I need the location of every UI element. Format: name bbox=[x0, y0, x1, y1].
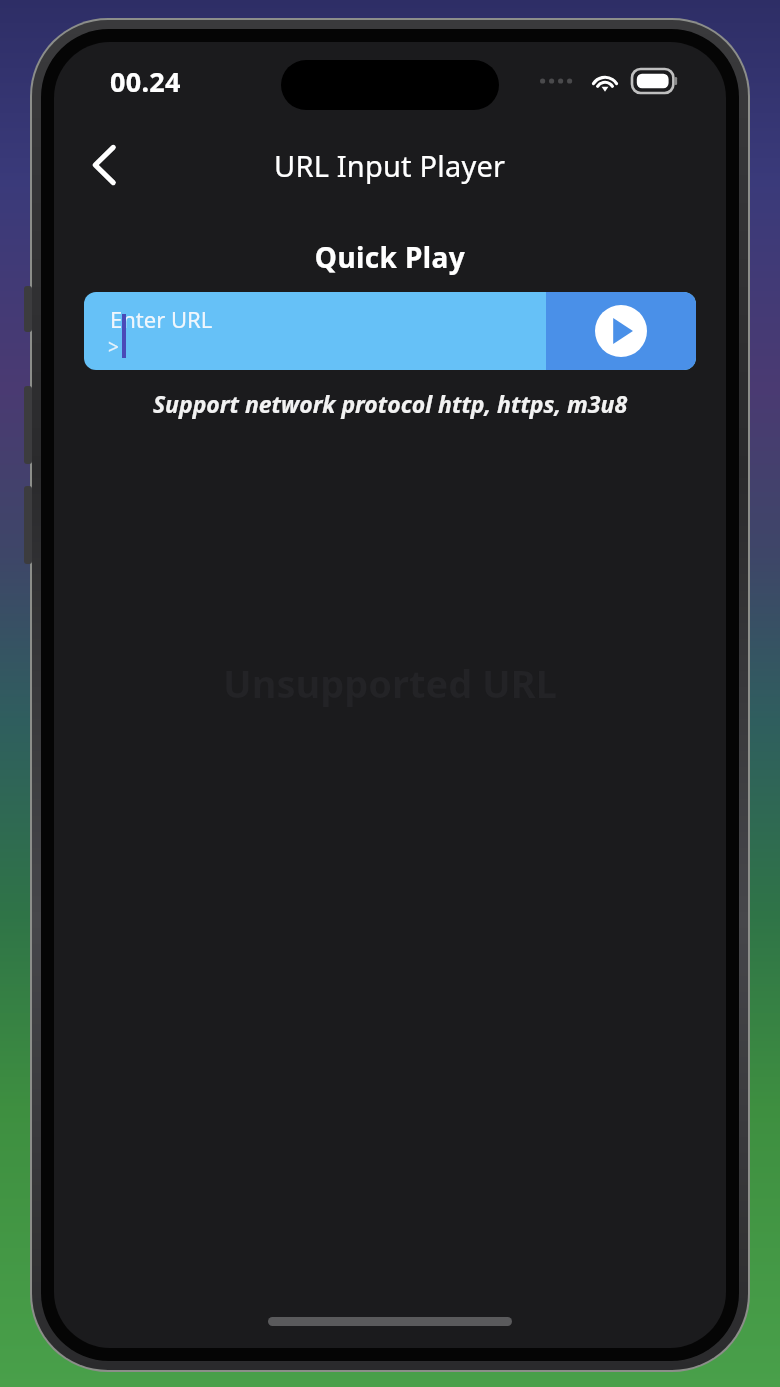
staticText: Enter URL bbox=[110, 304, 213, 334]
button[interactable]: Play bbox=[546, 292, 696, 370]
button[interactable]: Back bbox=[76, 137, 132, 193]
staticText: > bbox=[108, 334, 119, 360]
button[interactable]: Enter URL bbox=[84, 292, 546, 370]
staticText: 00.24 bbox=[110, 63, 181, 100]
staticText: URL Input Player bbox=[274, 146, 506, 185]
staticText: Quick Play bbox=[54, 238, 726, 276]
staticText: Support network protocol http, https, m3… bbox=[54, 388, 726, 419]
